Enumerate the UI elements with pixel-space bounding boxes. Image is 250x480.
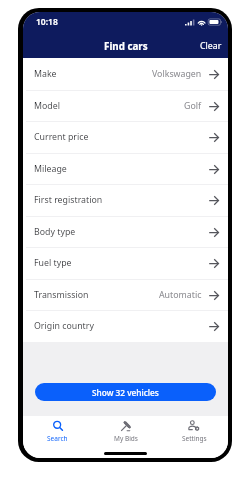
staticText: Transmission: [34, 289, 89, 301]
staticText: Automatic: [159, 289, 202, 301]
staticText: Make: [34, 68, 57, 80]
button[interactable]: Transmission: [23, 279, 228, 311]
staticText: My Bids: [114, 434, 138, 443]
staticText: Golf: [184, 100, 202, 112]
staticText: Current price: [34, 131, 89, 143]
button[interactable]: Fuel type: [23, 247, 228, 279]
button[interactable]: First registration: [23, 184, 228, 216]
button[interactable]: Clear: [194, 36, 228, 56]
button[interactable]: Origin country: [23, 310, 228, 342]
button[interactable]: Model: [23, 90, 228, 122]
button[interactable]: My Bids: [92, 416, 160, 447]
staticText: Body type: [34, 226, 76, 238]
staticText: Clear: [200, 40, 222, 52]
button[interactable]: Mileage: [23, 153, 228, 185]
button[interactable]: Body type: [23, 216, 228, 248]
staticText: Mileage: [34, 163, 67, 175]
button[interactable]: Settings: [160, 416, 228, 447]
button[interactable]: Current price: [23, 121, 228, 153]
staticText: Volkswagen: [152, 68, 202, 80]
button[interactable]: Search: [23, 416, 92, 447]
staticText: First registration: [34, 194, 103, 206]
staticText: Find cars: [104, 40, 148, 53]
button[interactable]: Show 32 vehicles: [35, 383, 216, 401]
staticText: Model: [34, 100, 60, 112]
staticText: Search: [47, 434, 68, 443]
staticText: Show 32 vehicles: [92, 387, 159, 398]
staticText: Fuel type: [34, 257, 72, 269]
button[interactable]: Make: [23, 58, 228, 90]
staticText: Settings: [182, 434, 207, 443]
staticText: 10:18: [36, 16, 58, 28]
staticText: Origin country: [34, 320, 94, 332]
